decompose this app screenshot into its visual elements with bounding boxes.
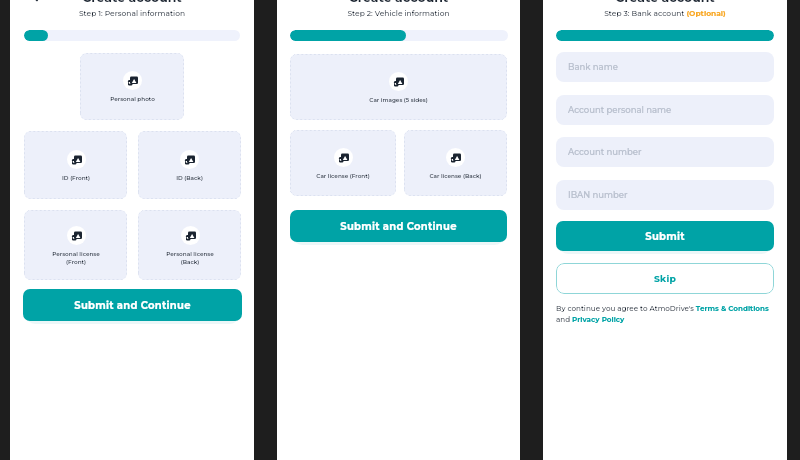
- staticText: Personal license (Back): [166, 250, 214, 265]
- button[interactable]: ID (Front): [24, 131, 127, 199]
- staticText: Submit and Continue: [74, 299, 191, 311]
- staticText: Car license (Front): [316, 172, 370, 179]
- staticText: IBAN number: [568, 190, 628, 200]
- staticText: Skip: [654, 273, 676, 284]
- staticText: Step 3: Bank account (Optional): [543, 9, 787, 18]
- staticText: Create account: [277, 0, 520, 5]
- staticText: Create account: [543, 0, 787, 5]
- staticText: Submit: [645, 230, 685, 242]
- staticText: ID (Back): [176, 174, 203, 181]
- staticText: Account number: [568, 147, 642, 157]
- button[interactable]: Personal license (Back): [138, 210, 241, 280]
- button[interactable]: Account personal name: [556, 95, 774, 125]
- staticText: Personal license (Front): [52, 250, 100, 265]
- button[interactable]: Account number: [556, 137, 774, 167]
- staticText: ID (Front): [62, 174, 90, 181]
- button[interactable]: ID (Back): [138, 131, 241, 199]
- button[interactable]: Car images (5 sides): [290, 54, 507, 120]
- staticText: Car images (5 sides): [369, 96, 428, 103]
- staticText: Create account: [10, 0, 254, 5]
- staticText: Personal photo: [110, 95, 155, 102]
- button[interactable]: Submit: [556, 221, 774, 251]
- staticText: Step 2: Vehicle information: [277, 9, 520, 18]
- staticText: By continue you agree to AtmoDrive's Ter…: [556, 304, 774, 324]
- button[interactable]: Bank name: [556, 52, 774, 82]
- button[interactable]: Car license (Back): [404, 130, 507, 196]
- staticText: Step 1: Personal information: [10, 9, 254, 18]
- button[interactable]: Back: [27, 0, 45, 6]
- staticText: Submit and Continue: [340, 220, 457, 232]
- button[interactable]: Submit and Continue: [23, 289, 242, 321]
- button[interactable]: IBAN number: [556, 180, 774, 210]
- staticText: Bank name: [568, 62, 618, 72]
- button[interactable]: Car license (Front): [290, 130, 396, 196]
- button[interactable]: Skip: [556, 263, 774, 294]
- button[interactable]: Personal photo: [80, 53, 184, 120]
- button[interactable]: Submit and Continue: [290, 210, 507, 242]
- staticText: Account personal name: [568, 105, 672, 115]
- staticText: Car license (Back): [429, 172, 482, 179]
- button[interactable]: Personal license (Front): [24, 210, 127, 280]
